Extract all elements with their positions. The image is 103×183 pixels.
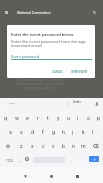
button[interactable]: m (78, 139, 88, 153)
button[interactable]: d (27, 125, 38, 139)
button[interactable]: f (38, 125, 48, 139)
button[interactable]: q (0, 111, 11, 125)
staticText: k (82, 129, 85, 135)
staticText: l (92, 129, 94, 135)
button[interactable]: x (27, 139, 38, 153)
staticText: w (15, 115, 19, 121)
button[interactable]: Enter (89, 156, 99, 162)
button[interactable]: Shift (0, 139, 16, 153)
button[interactable]: Delete (88, 139, 103, 153)
staticText: t (47, 115, 49, 121)
staticText: z (20, 143, 23, 149)
button[interactable]: Back (19, 170, 32, 183)
button[interactable]: Home (45, 170, 58, 183)
staticText: d (31, 129, 34, 135)
button[interactable]: r (33, 111, 43, 125)
button[interactable]: u (63, 111, 73, 125)
staticText: j (72, 129, 74, 135)
staticText: h (62, 129, 65, 135)
staticText: thanks (73, 101, 81, 104)
staticText: National Convention (17, 11, 51, 15)
staticText: g (52, 129, 55, 135)
button[interactable]: Search (89, 7, 99, 17)
staticText: Enter the event password from the app do… (11, 39, 86, 49)
staticText: o (87, 115, 90, 121)
staticText: a (9, 129, 12, 135)
staticText: p (97, 115, 100, 121)
button[interactable]: . (69, 157, 75, 164)
button[interactable]: o (83, 111, 93, 125)
button[interactable]: a (5, 125, 16, 139)
staticText: c (42, 143, 45, 149)
button[interactable]: w (11, 111, 22, 125)
staticText: Some events require a password (17, 78, 64, 82)
staticText: or access your event. (25, 86, 55, 90)
button[interactable]: , (18, 157, 23, 164)
button[interactable]: j (68, 125, 78, 139)
button[interactable]: v (48, 139, 58, 153)
button[interactable]: Voice input (93, 100, 100, 107)
button[interactable]: y (53, 111, 63, 125)
button[interactable]: l (88, 125, 98, 139)
button[interactable]: z (16, 139, 27, 153)
staticText: s (20, 129, 23, 135)
button[interactable]: s (16, 125, 27, 139)
button[interactable]: p (93, 111, 103, 125)
button[interactable]: e (22, 111, 33, 125)
staticText: Check your email for more details (16, 82, 64, 86)
button[interactable]: c (38, 139, 48, 153)
staticText: i (77, 115, 79, 121)
staticText: f (42, 129, 44, 135)
button[interactable]: g (48, 125, 58, 139)
staticText: q (4, 115, 7, 121)
staticText: r (37, 115, 39, 121)
button[interactable]: Expand toolbar (2, 101, 6, 105)
staticText: y (57, 115, 60, 121)
staticText: x (31, 143, 34, 149)
button[interactable]: Recent apps (71, 170, 84, 183)
staticText: e (26, 115, 29, 121)
button[interactable]: CANCEL (50, 68, 65, 75)
button[interactable]: b (58, 139, 68, 153)
button[interactable]: h (58, 125, 68, 139)
staticText: n (72, 143, 75, 149)
button[interactable]: i (73, 111, 83, 125)
button[interactable]: k (78, 125, 88, 139)
button[interactable]: n (68, 139, 78, 153)
button[interactable]: ?123 (5, 158, 14, 164)
button[interactable]: OPEN EVENT (69, 68, 90, 75)
staticText: b (62, 143, 65, 149)
staticText: u (67, 115, 70, 121)
staticText: Enter the event password below (11, 32, 74, 37)
staticText: v (52, 143, 55, 149)
staticText: Event password (11, 54, 40, 59)
staticText: PNG (10, 102, 15, 105)
staticText: m (81, 143, 86, 149)
button[interactable]: t (43, 111, 53, 125)
button[interactable]: Emoji (25, 157, 29, 161)
